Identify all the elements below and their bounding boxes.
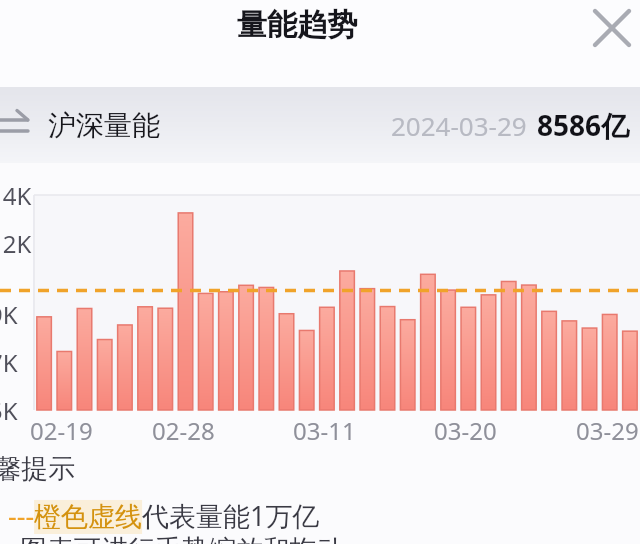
button[interactable]: Close <box>589 5 635 51</box>
staticText: 02-19 <box>30 414 93 447</box>
staticText: 9K <box>0 298 18 331</box>
staticText: 02-28 <box>152 414 215 447</box>
staticText: ---橙色虚线代表量能1万亿 <box>8 497 320 534</box>
staticText: 03-11 <box>293 414 356 447</box>
staticText: 图表可进行手势缩放和拖动 <box>20 533 344 544</box>
staticText: 量能趋势 <box>237 6 357 44</box>
staticText: 沪深量能 <box>48 108 160 143</box>
staticText: 03-20 <box>434 414 497 447</box>
staticText: 03-29 <box>576 414 639 447</box>
button[interactable]: Switch index <box>0 87 640 163</box>
button[interactable]: 14K <box>0 163 640 448</box>
staticText: 馨提示 <box>0 452 75 486</box>
staticText: 2024-03-29 <box>391 108 527 143</box>
staticText: 14K <box>0 179 32 212</box>
staticText: 8586亿 <box>537 106 630 144</box>
other: Switch index <box>0 100 30 150</box>
staticText: 12K <box>0 227 32 260</box>
staticText: 7K <box>0 346 18 379</box>
staticText: 5K <box>0 394 18 427</box>
